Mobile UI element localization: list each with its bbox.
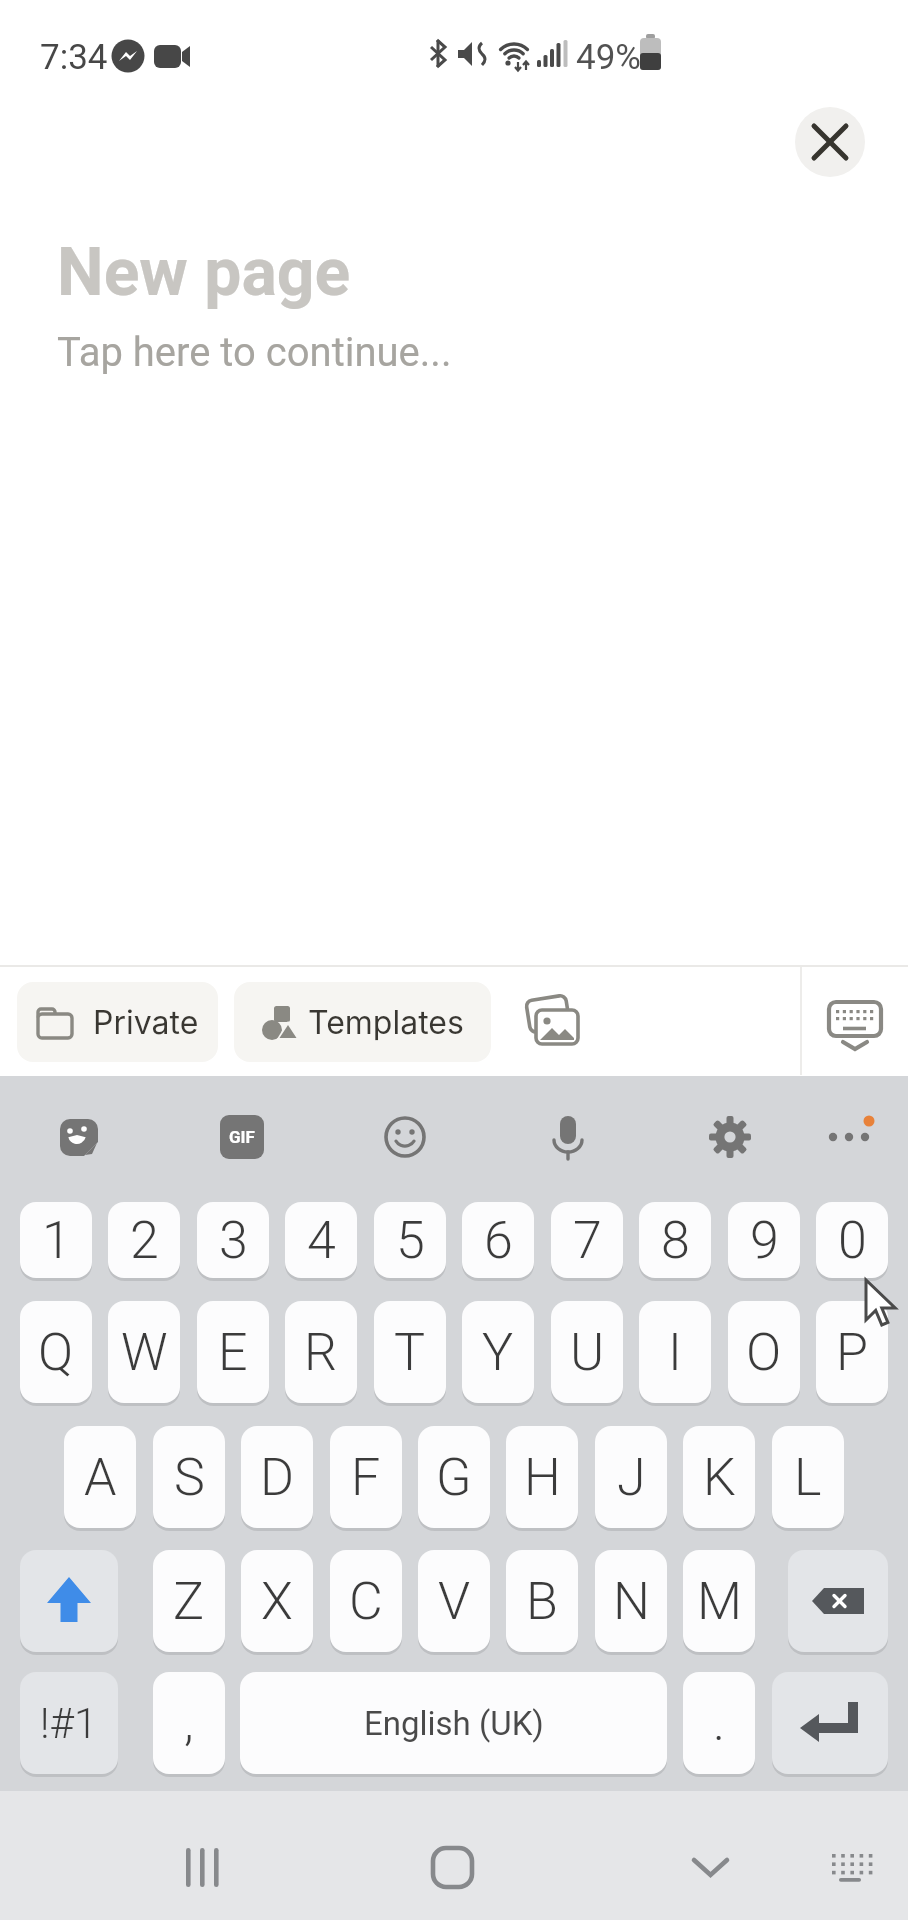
button[interactable]: B xyxy=(506,1550,578,1652)
staticText: L xyxy=(794,1447,822,1508)
button[interactable]: J xyxy=(595,1426,667,1528)
staticText: P xyxy=(836,1322,869,1383)
staticText: 6 xyxy=(484,1210,513,1271)
button[interactable]: 3 xyxy=(197,1202,269,1278)
staticText: 2 xyxy=(130,1210,159,1271)
staticText: S xyxy=(174,1447,205,1508)
button[interactable]: D xyxy=(241,1426,313,1528)
button[interactable]: H xyxy=(506,1426,578,1528)
button[interactable] xyxy=(155,1820,250,1915)
button[interactable] xyxy=(772,1672,888,1774)
staticText: English (UK) xyxy=(364,1704,544,1743)
staticText: 7 xyxy=(573,1210,602,1271)
button[interactable]: I xyxy=(639,1301,711,1403)
button[interactable] xyxy=(812,984,898,1068)
button[interactable]: 4 xyxy=(285,1202,357,1278)
staticText: U xyxy=(570,1322,605,1383)
button[interactable] xyxy=(795,107,865,177)
button[interactable]: 5 xyxy=(374,1202,446,1278)
staticText: 3 xyxy=(219,1210,248,1271)
button[interactable]: Z xyxy=(153,1550,225,1652)
staticText: , xyxy=(184,1694,194,1753)
button[interactable] xyxy=(814,1102,884,1172)
staticText: New page xyxy=(57,234,351,311)
staticText: I xyxy=(668,1322,682,1383)
button[interactable]: 0 xyxy=(816,1202,888,1278)
button[interactable]: , xyxy=(153,1672,225,1774)
button[interactable]: 8 xyxy=(639,1202,711,1278)
button[interactable] xyxy=(44,1102,114,1172)
button[interactable]: 2 xyxy=(108,1202,180,1278)
staticText: 7:34 xyxy=(40,37,108,78)
button[interactable]: W xyxy=(108,1301,180,1403)
button[interactable]: G xyxy=(418,1426,490,1528)
button[interactable]: 1 xyxy=(20,1202,92,1278)
staticText: D xyxy=(260,1447,295,1508)
staticText: G xyxy=(436,1447,472,1508)
staticText: T xyxy=(394,1322,426,1383)
button[interactable] xyxy=(20,1550,118,1652)
button[interactable]: T xyxy=(374,1301,446,1403)
button[interactable]: Q xyxy=(20,1301,92,1403)
button[interactable]: English (UK) xyxy=(240,1672,667,1774)
button[interactable] xyxy=(695,1102,765,1172)
staticText: 1 xyxy=(42,1210,71,1271)
staticText: Z xyxy=(173,1571,205,1632)
button[interactable]: O xyxy=(728,1301,800,1403)
button[interactable]: U xyxy=(551,1301,623,1403)
button[interactable]: Y xyxy=(462,1301,534,1403)
staticText: Tap here to continue... xyxy=(57,329,452,376)
button[interactable] xyxy=(788,1550,888,1652)
button[interactable]: 6 xyxy=(462,1202,534,1278)
staticText: 0 xyxy=(838,1210,867,1271)
button[interactable] xyxy=(370,1102,440,1172)
button[interactable]: C xyxy=(330,1550,402,1652)
staticText: Private xyxy=(93,1003,199,1042)
staticText: V xyxy=(438,1571,471,1632)
button[interactable]: !#1 xyxy=(20,1672,118,1774)
staticText: Y xyxy=(482,1322,514,1383)
button[interactable]: X xyxy=(241,1550,313,1652)
button[interactable]: P xyxy=(816,1301,888,1403)
button[interactable]: 7 xyxy=(551,1202,623,1278)
button[interactable]: R xyxy=(285,1301,357,1403)
button[interactable]: GIF xyxy=(207,1102,277,1172)
staticText: J xyxy=(617,1447,646,1508)
staticText: O xyxy=(746,1322,782,1383)
staticText: !#1 xyxy=(40,1699,98,1748)
staticText: A xyxy=(84,1447,117,1508)
button[interactable]: A xyxy=(64,1426,136,1528)
staticText: R xyxy=(304,1322,338,1383)
staticText: E xyxy=(218,1322,248,1383)
staticText: 8 xyxy=(661,1210,690,1271)
button[interactable]: M xyxy=(683,1550,755,1652)
staticText: Templates xyxy=(308,1003,464,1042)
button[interactable]: 9 xyxy=(728,1202,800,1278)
button[interactable]: N xyxy=(595,1550,667,1652)
button[interactable]: K xyxy=(683,1426,755,1528)
button[interactable]: S xyxy=(153,1426,225,1528)
button[interactable] xyxy=(514,988,588,1058)
staticText: K xyxy=(703,1447,736,1508)
button[interactable] xyxy=(405,1820,500,1915)
staticText: Q xyxy=(38,1322,74,1383)
button[interactable]: V xyxy=(418,1550,490,1652)
button[interactable]: L xyxy=(772,1426,844,1528)
button[interactable]: Templates xyxy=(234,982,491,1062)
staticText: X xyxy=(261,1571,293,1632)
button[interactable] xyxy=(663,1820,758,1915)
button[interactable]: F xyxy=(330,1426,402,1528)
staticText: F xyxy=(351,1447,381,1508)
staticText: H xyxy=(524,1447,561,1508)
button[interactable] xyxy=(533,1102,603,1172)
staticText: 5 xyxy=(396,1210,425,1271)
staticText: 49% xyxy=(576,37,641,78)
button[interactable]: Private xyxy=(17,982,218,1062)
button[interactable]: E xyxy=(197,1301,269,1403)
staticText: 4 xyxy=(307,1210,336,1271)
staticText: B xyxy=(526,1571,558,1632)
button[interactable] xyxy=(806,1824,894,1912)
staticText: 9 xyxy=(750,1210,779,1271)
staticText: . xyxy=(713,1694,725,1753)
button[interactable]: . xyxy=(683,1672,755,1774)
